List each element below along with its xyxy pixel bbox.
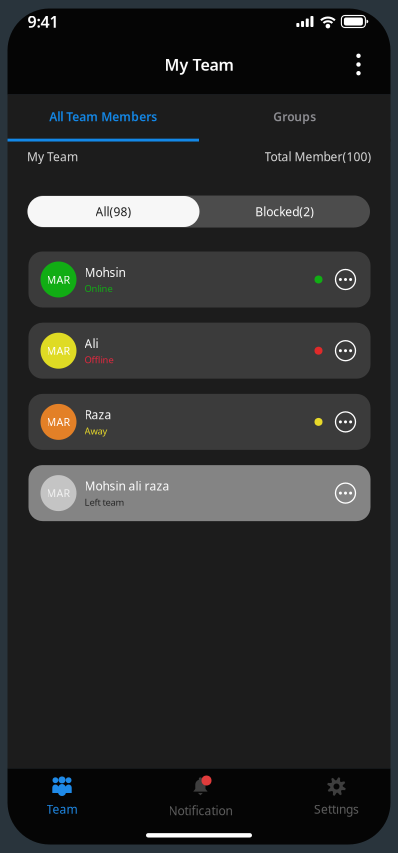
- staticText: Blocked(2): [255, 203, 314, 219]
- button[interactable]: More actions for Ali: [327, 329, 363, 373]
- staticText: Online: [84, 282, 112, 295]
- staticText: Away: [84, 425, 107, 437]
- staticText: Team: [46, 801, 77, 817]
- staticText: My Team: [27, 148, 78, 164]
- staticText: 9:41: [27, 11, 58, 32]
- staticText: MAR: [46, 486, 70, 500]
- button[interactable]: Blocked(2): [199, 196, 370, 227]
- button[interactable]: Team: [16, 774, 108, 819]
- button[interactable]: Groups: [199, 94, 390, 141]
- staticText: Mohsin: [84, 264, 125, 280]
- button[interactable]: MAR: [28, 465, 370, 521]
- staticText: Raza: [84, 407, 111, 423]
- staticText: Settings: [314, 801, 359, 817]
- button[interactable]: More options: [337, 41, 379, 87]
- button[interactable]: More actions for Mohsin ali raza: [327, 471, 363, 515]
- staticText: MAR: [46, 344, 70, 358]
- staticText: Offline: [84, 353, 113, 366]
- button[interactable]: MAR: [28, 394, 370, 450]
- staticText: Notification: [168, 802, 232, 818]
- button[interactable]: All Team Members: [7, 94, 199, 141]
- button[interactable]: All(98): [27, 196, 199, 227]
- staticText: Groups: [273, 109, 316, 124]
- staticText: Left team: [84, 496, 124, 508]
- staticText: Mohsin ali raza: [84, 478, 169, 494]
- button[interactable]: Notification: [154, 774, 246, 819]
- staticText: Total Member(100): [264, 148, 371, 164]
- staticText: Ali: [84, 335, 98, 351]
- button[interactable]: Settings: [290, 774, 382, 819]
- button[interactable]: MAR: [28, 251, 370, 307]
- button[interactable]: More actions for Raza: [327, 400, 363, 444]
- staticText: All(98): [95, 203, 131, 219]
- button[interactable]: MAR: [28, 323, 370, 379]
- staticText: MAR: [46, 415, 70, 429]
- staticText: All Team Members: [49, 109, 157, 124]
- staticText: MAR: [46, 272, 70, 287]
- button[interactable]: More actions for Mohsin: [327, 257, 363, 301]
- staticText: My Team: [164, 54, 233, 75]
